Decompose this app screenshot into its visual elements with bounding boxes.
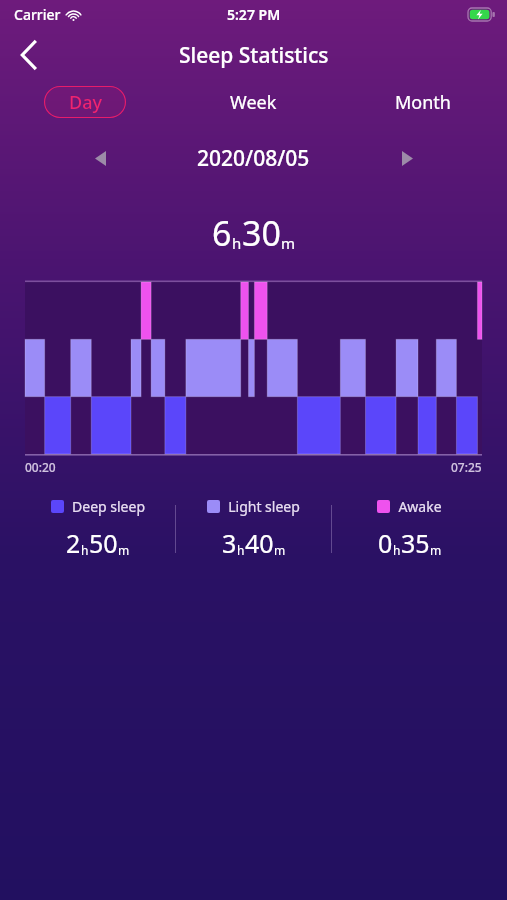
staticText: h [232, 233, 242, 253]
staticText: Week [230, 90, 277, 115]
staticText: 30 [242, 210, 281, 256]
button[interactable]: Day [44, 86, 126, 118]
staticText: Day [69, 90, 102, 115]
staticText: m [281, 233, 296, 253]
button[interactable]: Deep sleep [20, 497, 175, 560]
staticText: m [118, 542, 130, 558]
staticText: m [430, 542, 442, 558]
staticText: Sleep Statistics [179, 41, 329, 70]
staticText: 50 [89, 526, 118, 560]
staticText: 35 [401, 526, 430, 560]
staticText: h [81, 542, 89, 558]
button[interactable]: Back [6, 32, 52, 78]
staticText: Light sleep [228, 497, 300, 516]
button[interactable]: Awake [332, 497, 487, 560]
staticText: Deep sleep [72, 497, 145, 516]
staticText: Awake [398, 497, 442, 516]
button[interactable]: Light sleep [176, 497, 331, 560]
staticText: Carrier [14, 5, 61, 24]
staticText: m [274, 542, 286, 558]
staticText: 00:20 [25, 459, 56, 475]
staticText: 3 [222, 526, 237, 560]
staticText: 07:25 [451, 459, 482, 475]
staticText: 5:27 PM [227, 5, 281, 24]
button[interactable]: Month [338, 82, 507, 122]
staticText: Month [395, 90, 451, 115]
button[interactable]: Previous day [82, 140, 118, 176]
staticText: 2 [66, 526, 81, 560]
staticText: 0 [378, 526, 393, 560]
staticText: 2020/08/05 [197, 144, 310, 173]
button[interactable]: Week [169, 82, 338, 122]
button[interactable]: Next day [389, 140, 425, 176]
staticText: h [237, 542, 245, 558]
staticText: 6 [212, 210, 232, 256]
staticText: h [393, 542, 401, 558]
staticText: 40 [245, 526, 274, 560]
